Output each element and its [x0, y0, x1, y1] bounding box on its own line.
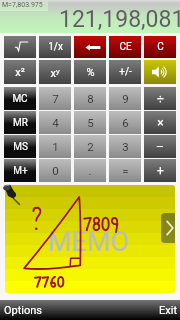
button[interactable]: = — [109, 159, 141, 182]
button[interactable]: MS — [4, 135, 36, 158]
staticText: % — [86, 66, 95, 79]
staticText: 0 — [52, 164, 59, 177]
button[interactable]: 1 — [39, 135, 71, 158]
button[interactable]: C — [144, 36, 176, 58]
staticText: Options — [4, 304, 43, 317]
staticText: 1 — [52, 140, 59, 153]
staticText: – — [156, 140, 164, 154]
staticText: 9 — [122, 92, 129, 105]
button[interactable]: 1/x — [39, 36, 71, 58]
button[interactable]: % — [74, 60, 106, 84]
button[interactable]: Options — [0, 300, 90, 320]
button[interactable]: + — [144, 159, 176, 182]
button[interactable]: Exit — [90, 300, 180, 320]
staticText: +/- — [119, 66, 132, 78]
button[interactable]: Backspace — [74, 36, 106, 58]
button[interactable]: . — [74, 159, 106, 182]
button[interactable]: M+ — [4, 159, 36, 182]
staticText: MR — [13, 117, 28, 129]
staticText: MS — [13, 141, 28, 153]
button[interactable]: Square root — [4, 36, 36, 58]
button[interactable]: Sound — [144, 60, 176, 84]
button[interactable]: 9 — [109, 87, 141, 110]
staticText: . — [88, 164, 92, 177]
button[interactable]: Next page — [161, 213, 175, 243]
button[interactable]: 2 — [74, 135, 106, 158]
button[interactable]: 6 — [109, 111, 141, 134]
staticText: 3 — [122, 140, 129, 153]
staticText: C — [157, 41, 164, 53]
staticText: 6 — [122, 116, 129, 129]
staticText: CE — [119, 41, 132, 53]
button[interactable]: 7 — [39, 87, 71, 110]
button[interactable]: ÷ — [144, 87, 176, 110]
staticText: 1/x — [48, 41, 63, 53]
staticText: = — [122, 164, 129, 177]
staticText: ÷ — [157, 92, 164, 106]
staticText: 2 — [87, 140, 94, 153]
staticText: MC — [12, 93, 28, 105]
staticText: xʸ — [50, 65, 60, 80]
staticText: + — [157, 164, 164, 178]
staticText: M+ — [13, 165, 28, 177]
button[interactable]: 5 — [74, 111, 106, 134]
button[interactable]: 0 — [39, 159, 71, 182]
button[interactable]: – — [144, 135, 176, 158]
staticText: MEMO — [48, 226, 130, 258]
button[interactable]: +/- — [109, 60, 141, 84]
staticText: 121,198,081 — [59, 6, 180, 33]
button[interactable]: MC — [4, 87, 36, 110]
staticText: 7 — [52, 92, 59, 105]
button[interactable]: CE — [109, 36, 141, 58]
staticText: M=7,803.975 — [2, 1, 43, 9]
button[interactable]: × — [144, 111, 176, 134]
staticText: 4 — [52, 116, 59, 129]
button[interactable]: x² — [4, 60, 36, 84]
button[interactable]: xʸ — [39, 60, 71, 84]
staticText: 8 — [87, 92, 94, 105]
button[interactable]: 3 — [109, 135, 141, 158]
button[interactable]: 4 — [39, 111, 71, 134]
staticText: × — [157, 116, 164, 130]
button[interactable]: MR — [4, 111, 36, 134]
button[interactable]: 8 — [74, 87, 106, 110]
staticText: x² — [15, 66, 25, 79]
staticText: Exit — [159, 304, 177, 317]
staticText: 5 — [87, 116, 94, 129]
